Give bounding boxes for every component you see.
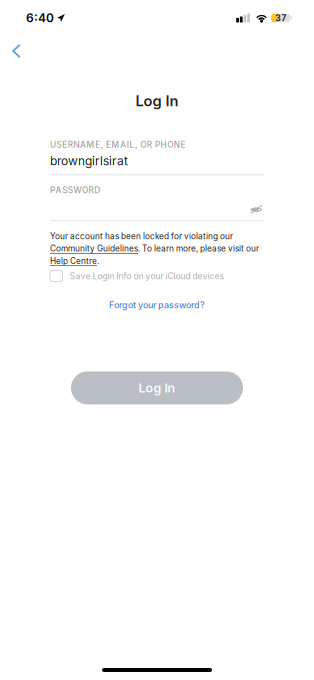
staticText: Save Login Info on your iCloud devices [70, 271, 225, 281]
button[interactable]: Save Login Info on your iCloud devices [50, 270, 264, 282]
button[interactable]: Forgot your password? [50, 300, 264, 310]
staticText: Your account has been locked for violati… [50, 231, 259, 266]
button[interactable]: Log In [71, 371, 243, 404]
staticText: 37 [275, 13, 286, 23]
staticText: browngirlsirat [50, 154, 128, 168]
button[interactable]: Show password [250, 202, 262, 216]
staticText: PASSWORD [50, 185, 100, 195]
staticText: 6:40 [26, 11, 54, 25]
staticText: Log In [138, 380, 175, 395]
staticText: USERNAME, EMAIL, OR PHONE [50, 140, 185, 150]
staticText: Log In [135, 92, 178, 110]
staticText: Forgot your password? [109, 300, 205, 310]
button[interactable]: Back [0, 37, 38, 65]
